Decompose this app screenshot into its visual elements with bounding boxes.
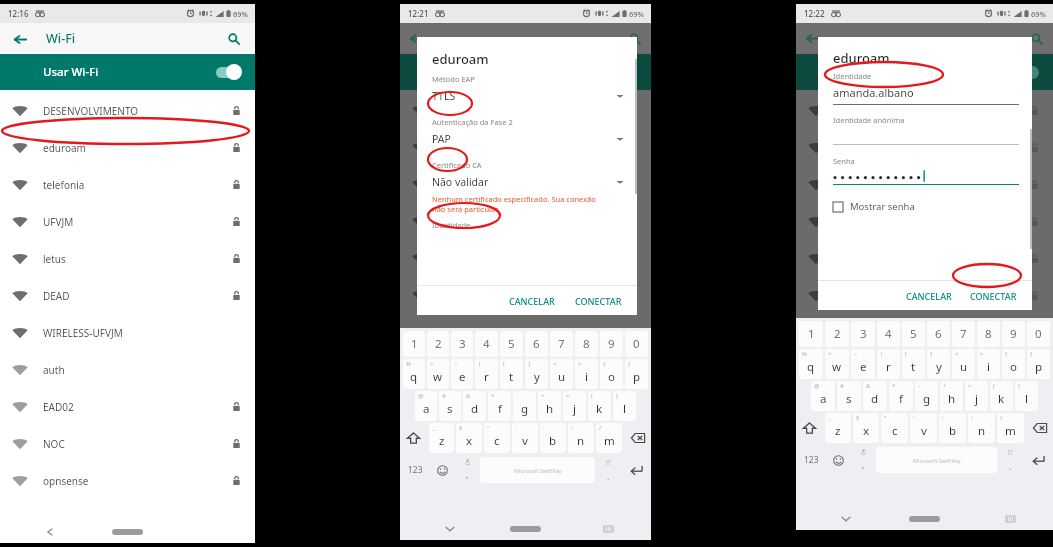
- button[interactable]: auth: [0, 351, 255, 388]
- button[interactable]: ~: [451, 359, 473, 389]
- button[interactable]: +: [940, 381, 963, 411]
- button[interactable]: Home: [112, 529, 143, 535]
- button[interactable]: /: [997, 413, 1024, 443]
- button[interactable]: ]: [525, 359, 548, 389]
- button[interactable]: ": [881, 413, 908, 443]
- button[interactable]: PAP: [432, 130, 627, 147]
- button[interactable]: telefonia: [0, 166, 255, 203]
- button[interactable]: UFVJM: [0, 203, 255, 240]
- button[interactable]: [: [500, 359, 523, 389]
- button[interactable]: TTLS: [432, 87, 627, 104]
- button[interactable]: |: [475, 359, 498, 389]
- button[interactable]: 4: [877, 321, 900, 347]
- button[interactable]: Switch keyboard: [601, 522, 615, 536]
- button[interactable]: DESENVOLVIMENTO: [0, 92, 255, 129]
- button[interactable]: %: [799, 349, 823, 379]
- button[interactable]: /: [596, 423, 622, 453]
- button[interactable]: ,: [454, 455, 480, 485]
- button[interactable]: |: [877, 349, 900, 379]
- button[interactable]: DEAD: [0, 277, 255, 314]
- button[interactable]: #: [439, 391, 461, 421]
- button[interactable]: ;: [568, 423, 594, 453]
- button[interactable]: ": [484, 423, 510, 453]
- button[interactable]: =: [965, 381, 988, 411]
- button[interactable]: +: [538, 391, 561, 421]
- button[interactable]: EAD02: [0, 388, 255, 425]
- button[interactable]: CONECTAR: [963, 285, 1024, 307]
- button[interactable]: 7: [550, 331, 573, 357]
- button[interactable]: 2: [825, 321, 849, 347]
- button[interactable]: eduroam: [0, 129, 255, 166]
- button[interactable]: ': [512, 423, 538, 453]
- button[interactable]: letus: [0, 240, 255, 277]
- button[interactable]: (: [588, 391, 611, 421]
- button[interactable]: ,: [850, 445, 876, 475]
- button[interactable]: -: [513, 391, 536, 421]
- button[interactable]: Home: [510, 526, 541, 532]
- button[interactable]: {: [600, 359, 623, 389]
- button[interactable]: Usar Wi-Fi: [0, 54, 255, 90]
- button[interactable]: 3: [451, 331, 473, 357]
- button[interactable]: CANCELAR: [899, 285, 959, 307]
- button[interactable]: }: [625, 359, 648, 389]
- button[interactable]: Microsoft SwiftKey: [876, 447, 997, 473]
- button[interactable]: Shift: [796, 413, 823, 443]
- button[interactable]: Hide keyboard: [838, 511, 854, 527]
- button[interactable]: CONECTAR: [568, 290, 629, 312]
- button[interactable]: ;: [968, 413, 995, 443]
- button[interactable]: Back: [10, 29, 30, 49]
- button[interactable]: (: [990, 381, 1013, 411]
- button[interactable]: ~: [851, 349, 875, 379]
- button[interactable]: Backspace: [624, 423, 651, 453]
- button[interactable]: Mostrar senha: [833, 200, 915, 213]
- button[interactable]: opnsense: [0, 462, 255, 499]
- button[interactable]: Back: [42, 524, 58, 540]
- button[interactable]: <: [550, 359, 573, 389]
- button[interactable]: Hide keyboard: [442, 521, 458, 537]
- button[interactable]: 9: [600, 331, 623, 357]
- button[interactable]: _: [825, 413, 851, 443]
- button[interactable]: 9: [1002, 321, 1025, 347]
- button[interactable]: ): [1015, 381, 1038, 411]
- button[interactable]: 3: [851, 321, 875, 347]
- button[interactable]: _: [429, 423, 454, 453]
- button[interactable]: 2: [427, 331, 449, 357]
- button[interactable]: $: [853, 413, 879, 443]
- button[interactable]: 8: [575, 331, 598, 357]
- button[interactable]: 123: [400, 455, 430, 485]
- button[interactable]: Enter: [621, 455, 651, 485]
- button[interactable]: @: [811, 381, 835, 411]
- button[interactable]: Backspace: [1026, 413, 1053, 443]
- button[interactable]: Enter: [1023, 445, 1053, 475]
- button[interactable]: $: [456, 423, 482, 453]
- button[interactable]: WIRELESS-UFVJM: [0, 314, 255, 351]
- button[interactable]: Home: [909, 516, 940, 522]
- button[interactable]: 0: [625, 331, 648, 357]
- button[interactable]: >: [977, 349, 1000, 379]
- button[interactable]: ): [613, 391, 636, 421]
- button[interactable]: *: [488, 391, 511, 421]
- button[interactable]: Microsoft SwiftKey: [480, 457, 595, 483]
- button[interactable]: %: [403, 359, 425, 389]
- button[interactable]: 7: [952, 321, 975, 347]
- button[interactable]: }: [1027, 349, 1050, 379]
- button[interactable]: 6: [927, 321, 950, 347]
- button[interactable]: <: [952, 349, 975, 379]
- button[interactable]: 6: [525, 331, 548, 357]
- button[interactable]: -: [915, 381, 938, 411]
- button[interactable]: [: [902, 349, 925, 379]
- button[interactable]: 1: [799, 321, 823, 347]
- button[interactable]: 123: [796, 445, 826, 475]
- button[interactable]: @: [415, 391, 437, 421]
- button[interactable]: =: [563, 391, 586, 421]
- button[interactable]: &: [863, 381, 887, 411]
- button[interactable]: Shift: [400, 423, 427, 453]
- button[interactable]: {: [1002, 349, 1025, 379]
- button[interactable]: 4: [475, 331, 498, 357]
- button[interactable]: 5: [902, 321, 925, 347]
- button[interactable]: &: [463, 391, 486, 421]
- button[interactable]: 5: [500, 331, 523, 357]
- button[interactable]: Emoji: [826, 445, 850, 475]
- button[interactable]: 1: [403, 331, 425, 357]
- button[interactable]: #: [837, 381, 861, 411]
